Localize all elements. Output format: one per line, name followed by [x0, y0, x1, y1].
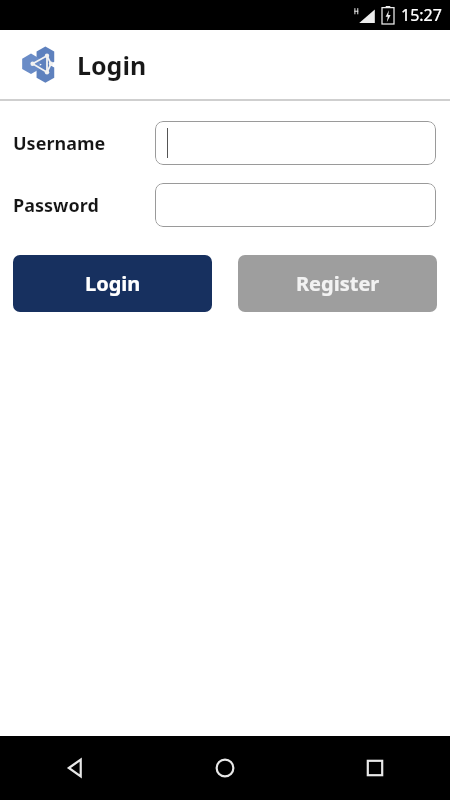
staticText: Login [77, 48, 147, 82]
staticText: Username [13, 131, 106, 156]
staticText: Register [296, 270, 380, 297]
button[interactable] [155, 121, 436, 165]
button[interactable]: Register [238, 255, 437, 312]
button[interactable]: Recent apps [300, 736, 450, 800]
staticText: Password [13, 193, 99, 218]
button[interactable] [155, 183, 436, 227]
other: App logo [19, 45, 59, 85]
button[interactable]: Back [0, 736, 150, 800]
button[interactable]: Login [13, 255, 212, 312]
staticText: Login [85, 270, 141, 297]
button[interactable]: Home [150, 736, 300, 800]
staticText: 15:27 [401, 4, 442, 26]
